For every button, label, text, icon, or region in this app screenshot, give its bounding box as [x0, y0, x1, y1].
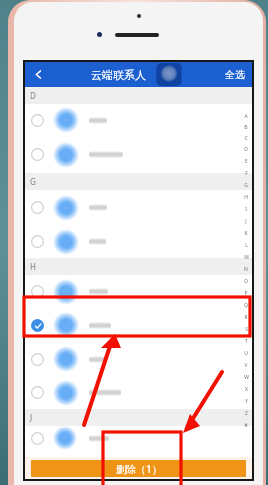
button[interactable] [25, 225, 252, 258]
staticText: U [244, 350, 248, 357]
button[interactable] [25, 190, 252, 225]
staticText: H [244, 194, 248, 201]
staticText: # [244, 422, 248, 429]
staticText: 全选 [225, 68, 245, 81]
button[interactable] [25, 376, 252, 409]
staticText: M [244, 254, 249, 261]
staticText: O [244, 278, 248, 285]
staticText: F [245, 170, 248, 177]
button[interactable] [25, 426, 252, 450]
button[interactable]: 删除（1） [31, 460, 246, 477]
staticText: H [30, 261, 36, 272]
staticText: 删除（1） [116, 462, 162, 476]
staticText: 云端联系人 [91, 68, 146, 82]
staticText: D [30, 90, 36, 101]
button[interactable]: Alphabet index [242, 111, 250, 431]
staticText: A [244, 113, 248, 120]
staticText: C [244, 135, 248, 142]
button[interactable] [25, 308, 252, 342]
staticText: W [244, 374, 249, 381]
staticText: L [245, 242, 248, 249]
staticText: G [244, 182, 248, 189]
staticText: K [244, 230, 248, 237]
staticText: R [244, 314, 248, 321]
staticText: X [245, 386, 248, 393]
staticText: V [244, 362, 248, 369]
staticText: I [245, 206, 247, 213]
staticText: S [245, 326, 248, 333]
button[interactable] [25, 275, 252, 308]
button[interactable]: 全选 [225, 62, 245, 87]
button[interactable] [25, 136, 252, 173]
staticText: B [244, 124, 248, 131]
staticText: E [245, 158, 248, 165]
staticText: Y [245, 398, 248, 405]
staticText: N [244, 266, 248, 273]
staticText: P [244, 290, 248, 297]
staticText: D [244, 146, 248, 153]
button[interactable] [25, 342, 252, 376]
staticText: J [30, 412, 33, 423]
button[interactable]: Back [25, 62, 51, 87]
button[interactable] [25, 104, 252, 136]
staticText: Z [245, 410, 248, 417]
staticText: J [245, 218, 247, 225]
staticText: T [245, 338, 248, 345]
button[interactable]: Avatar [154, 62, 184, 87]
staticText: Q [244, 302, 248, 309]
staticText: G [30, 176, 36, 187]
